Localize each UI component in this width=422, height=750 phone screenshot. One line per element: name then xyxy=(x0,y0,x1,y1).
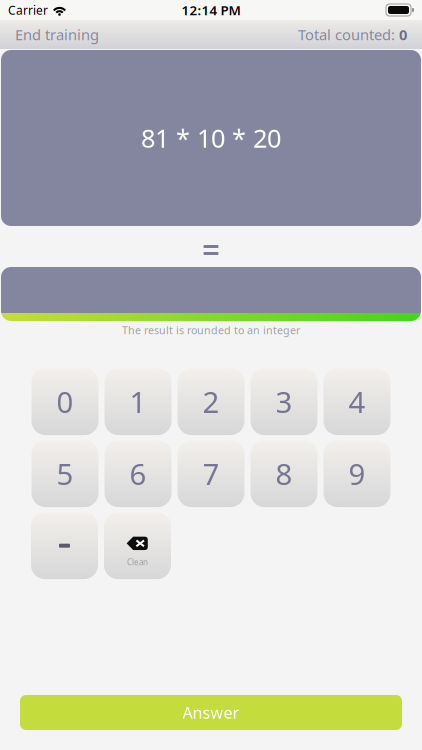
button[interactable]: 2 xyxy=(177,368,244,435)
button[interactable]: 4 xyxy=(323,368,390,435)
button[interactable]: 0 xyxy=(31,368,98,435)
button[interactable]: Total counted: xyxy=(298,25,407,44)
staticText: 3 xyxy=(275,382,292,421)
staticText: Answer xyxy=(182,702,239,723)
staticText: 81 * 10 * 20 xyxy=(141,121,281,155)
button[interactable]: Minus xyxy=(31,512,98,579)
staticText: 9 xyxy=(348,454,365,493)
button[interactable]: Answer xyxy=(20,695,402,730)
staticText: Clean xyxy=(127,557,148,567)
staticText: 0 xyxy=(399,25,407,44)
staticText: 1 xyxy=(129,382,146,421)
staticText: Carrier xyxy=(8,2,48,18)
button[interactable]: 9 xyxy=(323,440,390,507)
staticText: 6 xyxy=(129,454,146,493)
staticText: 0 xyxy=(56,382,73,421)
staticText: Total counted: xyxy=(298,25,399,44)
staticText: The result is rounded to an integer xyxy=(122,323,300,337)
button[interactable]: 5 xyxy=(31,440,98,507)
staticText: 4 xyxy=(348,382,365,421)
button[interactable]: End training xyxy=(15,25,99,44)
staticText: 5 xyxy=(56,454,73,493)
button[interactable]: 7 xyxy=(177,440,244,507)
staticText: 12:14 PM xyxy=(181,1,240,19)
staticText: 2 xyxy=(202,382,219,421)
button[interactable]: 8 xyxy=(250,440,317,507)
button[interactable]: 3 xyxy=(250,368,317,435)
staticText: End training xyxy=(15,25,99,44)
button[interactable]: Clean xyxy=(104,512,171,579)
button[interactable]: 6 xyxy=(104,440,171,507)
button[interactable]: 1 xyxy=(104,368,171,435)
staticText: 8 xyxy=(275,454,292,493)
staticText: 7 xyxy=(202,454,219,493)
